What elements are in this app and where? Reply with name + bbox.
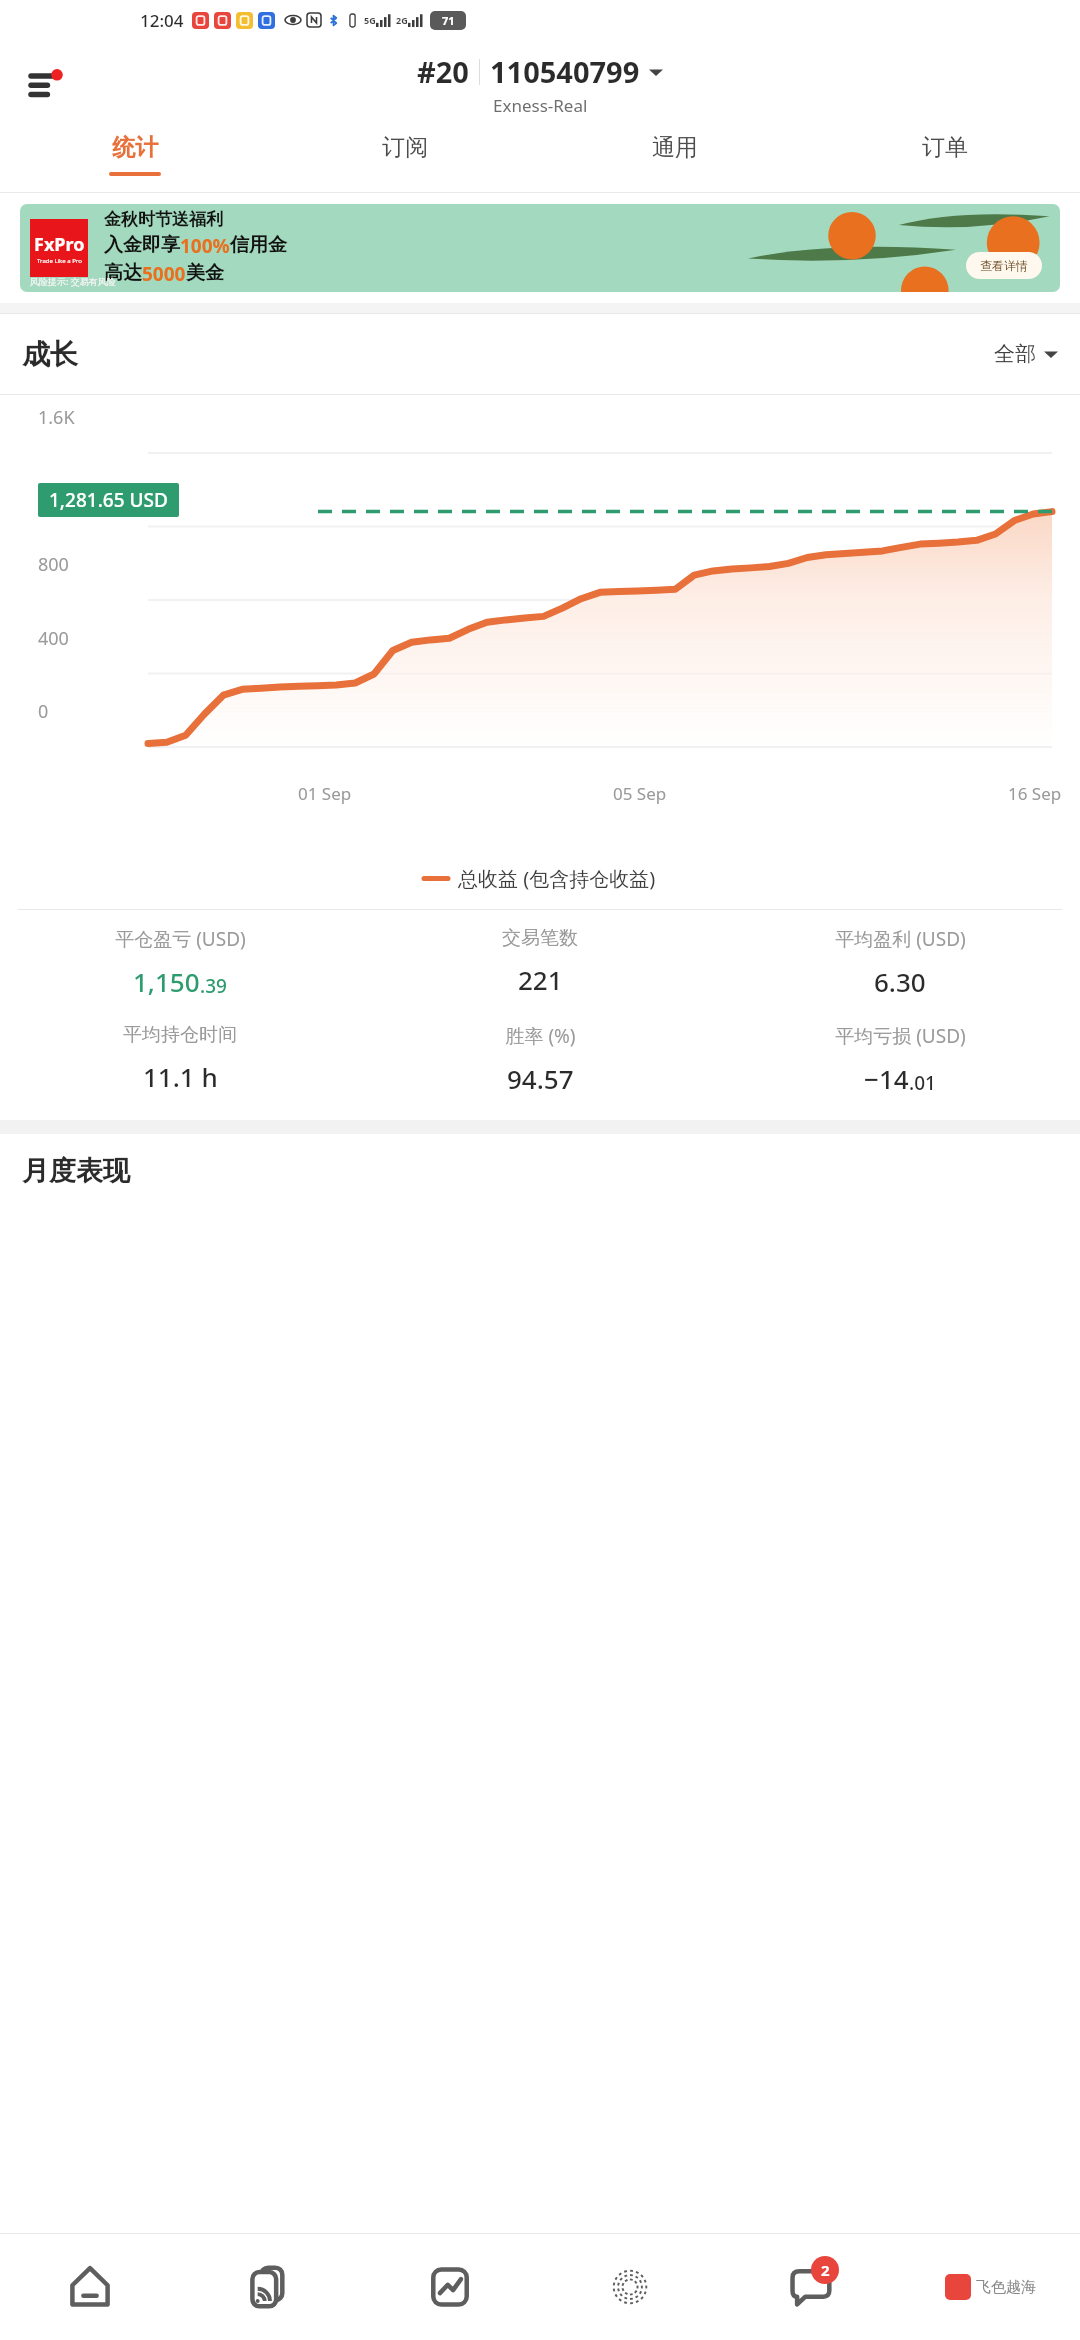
- staticText: .01: [909, 1070, 936, 1096]
- staticText: 平均持仓时间: [123, 1023, 237, 1047]
- staticText: 94.57: [507, 1061, 574, 1096]
- staticText: 5G: [364, 14, 376, 26]
- button[interactable]: 全部: [994, 341, 1058, 367]
- staticText: 16 Sep: [1008, 782, 1062, 805]
- staticText: 01 Sep: [298, 782, 352, 805]
- staticText: 查看详情: [980, 258, 1028, 273]
- staticText: 胜率 (%): [505, 1023, 576, 1049]
- staticText: 飞色越海: [976, 2278, 1036, 2297]
- button[interactable]: FxPro: [20, 204, 1060, 292]
- staticText: 高达: [104, 261, 142, 285]
- staticText: 入金即享: [104, 233, 180, 257]
- staticText: 05 Sep: [613, 782, 667, 805]
- button[interactable]: 订单: [810, 128, 1080, 192]
- staticText: 11.1 h: [143, 1059, 218, 1094]
- staticText: 2G: [396, 14, 408, 26]
- staticText: 400: [38, 626, 69, 651]
- button[interactable]: 通用: [540, 128, 810, 192]
- staticText: −14: [864, 1061, 909, 1096]
- staticText: Trade Like a Pro: [37, 257, 82, 265]
- staticText: 月度表现: [22, 1154, 130, 1188]
- button[interactable]: Quotes: [360, 2234, 540, 2340]
- staticText: 订单: [922, 133, 968, 162]
- staticText: 71: [442, 13, 455, 28]
- staticText: 信用金: [230, 233, 287, 257]
- staticText: Exness-Real: [493, 94, 588, 117]
- staticText: 统计: [112, 133, 158, 162]
- staticText: 1,150: [133, 964, 200, 999]
- staticText: #20: [417, 52, 469, 91]
- staticText: FxPro: [34, 232, 85, 257]
- staticText: 风险提示: 交易有风险: [30, 275, 116, 287]
- staticText: 1.2K: [38, 479, 75, 504]
- button[interactable]: Signals: [180, 2234, 360, 2340]
- staticText: 110540799: [490, 52, 640, 91]
- button[interactable]: Community: [540, 2234, 720, 2340]
- staticText: 全部: [994, 341, 1036, 367]
- staticText: 总收益 (包含持仓收益): [458, 865, 656, 892]
- staticText: .39: [200, 973, 227, 999]
- button[interactable]: 统计: [0, 128, 270, 192]
- staticText: 800: [38, 552, 69, 577]
- staticText: 12:04: [140, 9, 184, 32]
- staticText: 5000: [142, 261, 186, 287]
- staticText: 平均盈利 (USD): [835, 926, 966, 952]
- button[interactable]: Messages: [720, 2234, 900, 2340]
- staticText: 金秋时节送福利: [104, 209, 223, 230]
- staticText: 1.6K: [38, 405, 75, 430]
- staticText: 交易笔数: [502, 926, 578, 950]
- button[interactable]: 订阅: [270, 128, 540, 192]
- staticText: 平均亏损 (USD): [835, 1023, 966, 1049]
- staticText: 通用: [652, 133, 698, 162]
- staticText: 成长: [22, 337, 78, 372]
- staticText: 0: [38, 699, 49, 724]
- staticText: 平仓盈亏 (USD): [115, 926, 246, 952]
- staticText: 2: [821, 2260, 830, 2280]
- staticText: 美金: [186, 261, 224, 285]
- staticText: 100%: [180, 233, 230, 259]
- staticText: 订阅: [382, 133, 428, 162]
- button[interactable]: Home: [0, 2234, 180, 2340]
- staticText: 221: [518, 962, 563, 997]
- staticText: 1,281.65 USD: [49, 487, 168, 513]
- button[interactable]: Menu: [20, 55, 78, 113]
- staticText: 6.30: [874, 964, 926, 999]
- button[interactable]: 查看详情: [966, 252, 1042, 279]
- button[interactable]: Profile: [900, 2234, 1080, 2340]
